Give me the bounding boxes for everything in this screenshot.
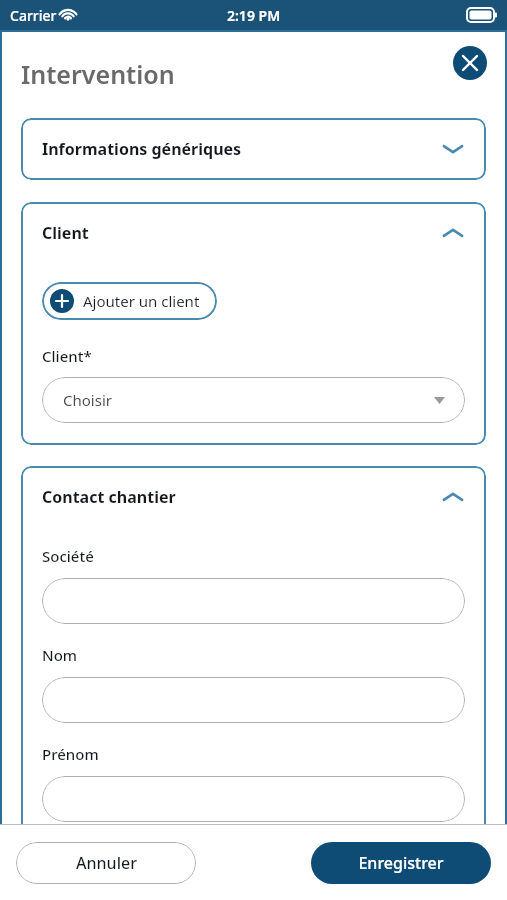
button[interactable] — [42, 677, 465, 723]
button[interactable]: Informations génériques — [42, 118, 465, 180]
staticText: Enregistrer — [358, 852, 444, 874]
staticText: Nom — [42, 645, 78, 665]
button[interactable]: Contact chantier — [42, 466, 465, 528]
button[interactable]: Client — [42, 202, 465, 264]
staticText: 2:19 PM — [227, 6, 281, 25]
button[interactable]: Fermer — [453, 46, 487, 80]
staticText: Société — [42, 546, 94, 566]
staticText: Intervention — [21, 57, 175, 91]
button[interactable]: Annuler — [16, 842, 196, 884]
staticText: Choisir — [63, 390, 434, 410]
staticText: Informations génériques — [42, 138, 441, 160]
staticText: Carrier — [10, 6, 57, 25]
button[interactable] — [42, 776, 465, 822]
button[interactable]: Choisir — [42, 377, 465, 423]
staticText: Annuler — [76, 852, 137, 874]
staticText: Contact chantier — [42, 486, 441, 508]
staticText: Ajouter un client — [83, 291, 200, 311]
button[interactable]: Ajouter un client — [42, 282, 217, 320]
button[interactable]: Enregistrer — [311, 842, 491, 884]
button[interactable] — [42, 578, 465, 624]
staticText: Client* — [42, 346, 92, 366]
staticText: Client — [42, 222, 441, 244]
staticText: Prénom — [42, 744, 99, 764]
